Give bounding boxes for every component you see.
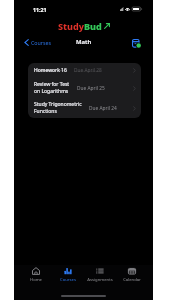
staticText: on Logarithms: [34, 88, 69, 95]
button[interactable]: Homework 16: [28, 63, 141, 78]
staticText: Home: [30, 277, 42, 283]
button[interactable]: Courses: [52, 265, 84, 287]
staticText: StudyBud: [58, 20, 102, 32]
button[interactable]: Calendar: [116, 265, 147, 287]
staticText: Calendar: [123, 277, 141, 283]
staticText: Homework 16: [34, 67, 67, 74]
button[interactable]: Assignments: [84, 265, 116, 287]
button[interactable]: Add assignment: [132, 39, 141, 48]
staticText: 11:21: [33, 6, 47, 13]
button[interactable]: Home: [20, 265, 52, 287]
staticText: Study Trigonometric: [34, 101, 82, 108]
button[interactable]: Courses: [14, 37, 56, 48]
staticText: Functions: [34, 108, 57, 115]
staticText: Assignments: [87, 277, 113, 283]
button[interactable]: Review for Test: [28, 78, 141, 98]
staticText: Due April 24: [89, 105, 117, 112]
staticText: Courses: [60, 277, 76, 283]
staticText: Due April 28: [74, 67, 102, 74]
button[interactable]: Study Trigonometric: [28, 98, 141, 118]
staticText: Review for Test: [34, 81, 70, 88]
staticText: Courses: [31, 39, 52, 46]
staticText: Due April 25: [77, 85, 105, 92]
staticText: Math: [76, 38, 92, 46]
